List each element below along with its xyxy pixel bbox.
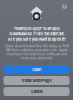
staticText: Show Web Page (21, 78, 51, 83)
button[interactable]: Show Web Page (3, 76, 69, 85)
staticText: ? (63, 4, 65, 9)
staticText: Open (32, 67, 41, 72)
staticText: Safari downloaded this file today at 9:4… (4, 44, 68, 60)
staticText: Cancel (30, 89, 42, 94)
button[interactable]: Help (59, 1, 70, 12)
staticText: “Example App” is an app downloaded from … (7, 26, 65, 42)
button[interactable]: Open (3, 65, 69, 74)
button[interactable]: Cancel (3, 87, 69, 96)
